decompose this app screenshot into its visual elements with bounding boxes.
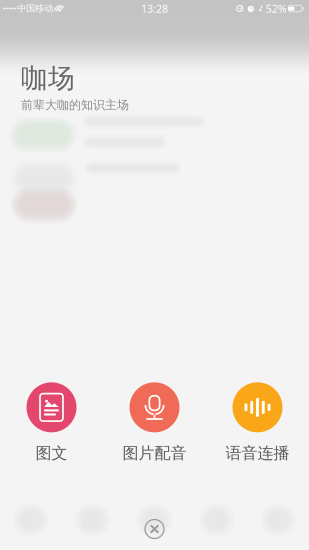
button[interactable]: Close — [136, 511, 172, 547]
staticText: 语音连播 — [225, 443, 289, 463]
staticText: 13:28 — [141, 1, 168, 16]
button[interactable]: 图片配音 — [103, 382, 206, 463]
staticText: 前辈大咖的知识主场 — [21, 98, 129, 112]
button[interactable]: 语音连播 — [206, 382, 309, 463]
staticText: 52% — [263, 1, 287, 16]
staticText: 中国移动 — [14, 3, 53, 14]
staticText: 图文 — [35, 443, 67, 463]
button[interactable]: 图文 — [0, 382, 103, 463]
staticText: 图片配音 — [122, 443, 186, 463]
staticText: 咖场 — [21, 62, 75, 95]
